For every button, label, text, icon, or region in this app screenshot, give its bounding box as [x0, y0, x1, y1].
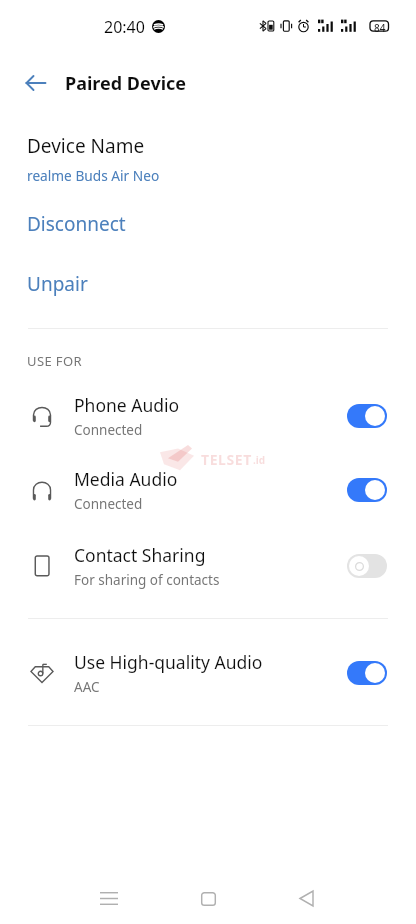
staticText: Unpair	[27, 271, 88, 297]
staticText: .id	[253, 453, 266, 467]
staticText: Contact Sharing	[74, 543, 206, 567]
button[interactable]	[347, 554, 387, 578]
staticText: realme Buds Air Neo	[27, 166, 160, 185]
staticText: Disconnect	[27, 211, 126, 237]
staticText: Paired Device	[65, 71, 187, 96]
button[interactable]	[347, 661, 387, 685]
staticText: 20:40	[104, 16, 145, 38]
button[interactable]: Home	[182, 873, 235, 924]
staticText: For sharing of contacts	[74, 571, 220, 589]
button[interactable]: Back	[280, 872, 333, 924]
button[interactable]: Use High-quality Audio	[0, 645, 416, 701]
button[interactable]: Back	[16, 63, 56, 103]
button[interactable]: Unpair	[0, 265, 416, 303]
staticText: Device Name	[27, 133, 145, 159]
staticText: Connected	[74, 495, 143, 513]
staticText: 84	[374, 21, 386, 35]
staticText: Connected	[74, 421, 143, 439]
button[interactable]: Disconnect	[0, 205, 416, 243]
button[interactable]: Media Audio	[0, 462, 416, 518]
button[interactable]: Recent apps	[82, 872, 135, 924]
staticText: AAC	[74, 678, 100, 696]
button[interactable]: Contact Sharing	[0, 538, 416, 594]
button[interactable]: Phone Audio	[0, 388, 416, 444]
staticText: Media Audio	[74, 467, 178, 491]
button[interactable]	[347, 404, 387, 428]
staticText: Use High-quality Audio	[74, 650, 263, 674]
staticText: Phone Audio	[74, 393, 180, 417]
button[interactable]	[347, 478, 387, 502]
staticText: USE FOR	[27, 352, 83, 370]
staticText: TELSET	[201, 450, 252, 469]
